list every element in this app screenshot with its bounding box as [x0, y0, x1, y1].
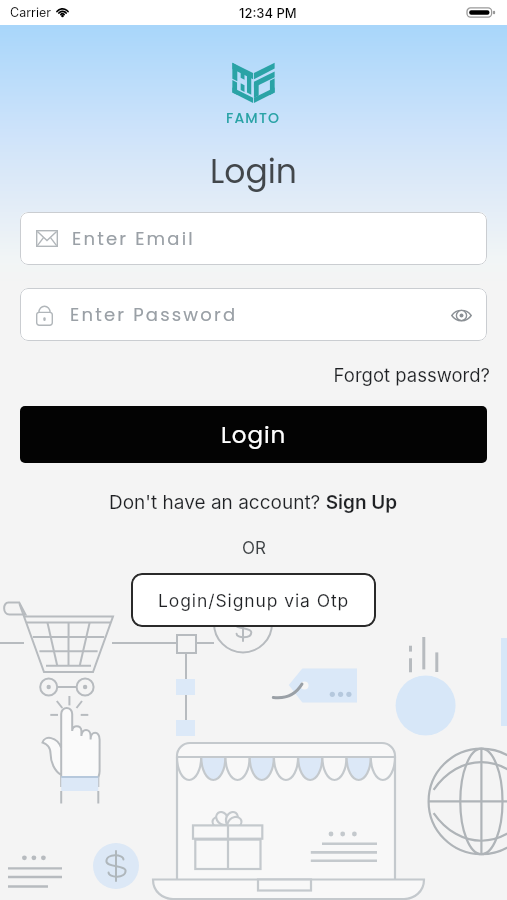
- staticText: Don't have an account? Sign Up: [109, 491, 398, 514]
- staticText: 12:34 PM: [239, 5, 297, 21]
- button[interactable]: Login: [20, 406, 487, 463]
- button[interactable]: Forgot password?: [333, 364, 490, 386]
- staticText: Carrier: [10, 5, 51, 20]
- staticText: Login/Signup via Otp: [158, 590, 350, 611]
- staticText: Login: [221, 419, 287, 451]
- button[interactable]: Show password: [446, 300, 476, 330]
- staticText: Forgot password?: [333, 364, 490, 386]
- staticText: FAMTO: [226, 108, 281, 128]
- staticText: OR: [242, 538, 266, 559]
- button[interactable]: Don't have an account? Sign Up: [109, 491, 398, 514]
- staticText: Enter Email: [72, 226, 195, 251]
- button[interactable]: Enter Password: [20, 288, 487, 341]
- staticText: Enter Password: [70, 302, 238, 327]
- staticText: Login: [210, 148, 297, 194]
- button[interactable]: Login/Signup via Otp: [131, 573, 376, 627]
- button[interactable]: Enter Email: [20, 212, 487, 265]
